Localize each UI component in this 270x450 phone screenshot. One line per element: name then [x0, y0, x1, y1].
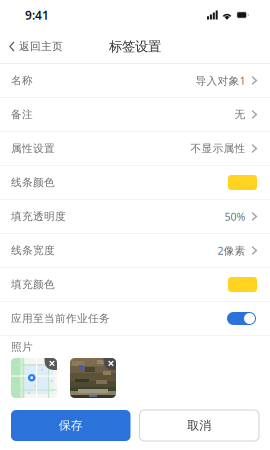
staticText: 填充颜色 — [11, 278, 55, 291]
staticText: 50% — [224, 209, 245, 224]
button[interactable]: 取消 — [139, 410, 259, 441]
button[interactable]: 属性设置 — [0, 132, 270, 165]
button[interactable]: 填充透明度 — [0, 200, 270, 233]
staticText: 2像素 — [217, 243, 245, 258]
button[interactable]: 线条颜色 — [0, 166, 270, 199]
staticText: 备注 — [11, 108, 33, 121]
button[interactable]: 返回主页 — [0, 32, 71, 61]
staticText: 9:41 — [25, 7, 49, 23]
staticText: 名称 — [11, 74, 33, 87]
staticText: 返回主页 — [19, 40, 63, 53]
staticText: 不显示属性 — [190, 142, 245, 155]
staticText: 属性设置 — [11, 142, 55, 155]
staticText: 无 — [234, 108, 245, 121]
staticText: 标签设置 — [109, 38, 161, 55]
button[interactable]: 名称 — [0, 64, 270, 97]
staticText: 应用至当前作业任务 — [11, 312, 110, 325]
staticText: 线条宽度 — [11, 244, 55, 257]
button[interactable]: 填充颜色 — [0, 268, 270, 301]
button[interactable]: Remove photo — [11, 358, 57, 398]
staticText: 取消 — [187, 418, 211, 433]
staticText: 填充透明度 — [11, 210, 66, 223]
button[interactable]: 保存 — [11, 410, 130, 441]
button[interactable]: Remove photo — [70, 358, 116, 398]
staticText: 照片 — [11, 340, 33, 353]
button[interactable]: 应用至当前作业任务 — [0, 302, 270, 335]
staticText: 线条颜色 — [11, 176, 55, 189]
button[interactable]: 线条宽度 — [0, 234, 270, 267]
button[interactable]: 备注 — [0, 98, 270, 131]
staticText: 保存 — [59, 418, 83, 433]
staticText: 导入对象1 — [195, 73, 245, 88]
